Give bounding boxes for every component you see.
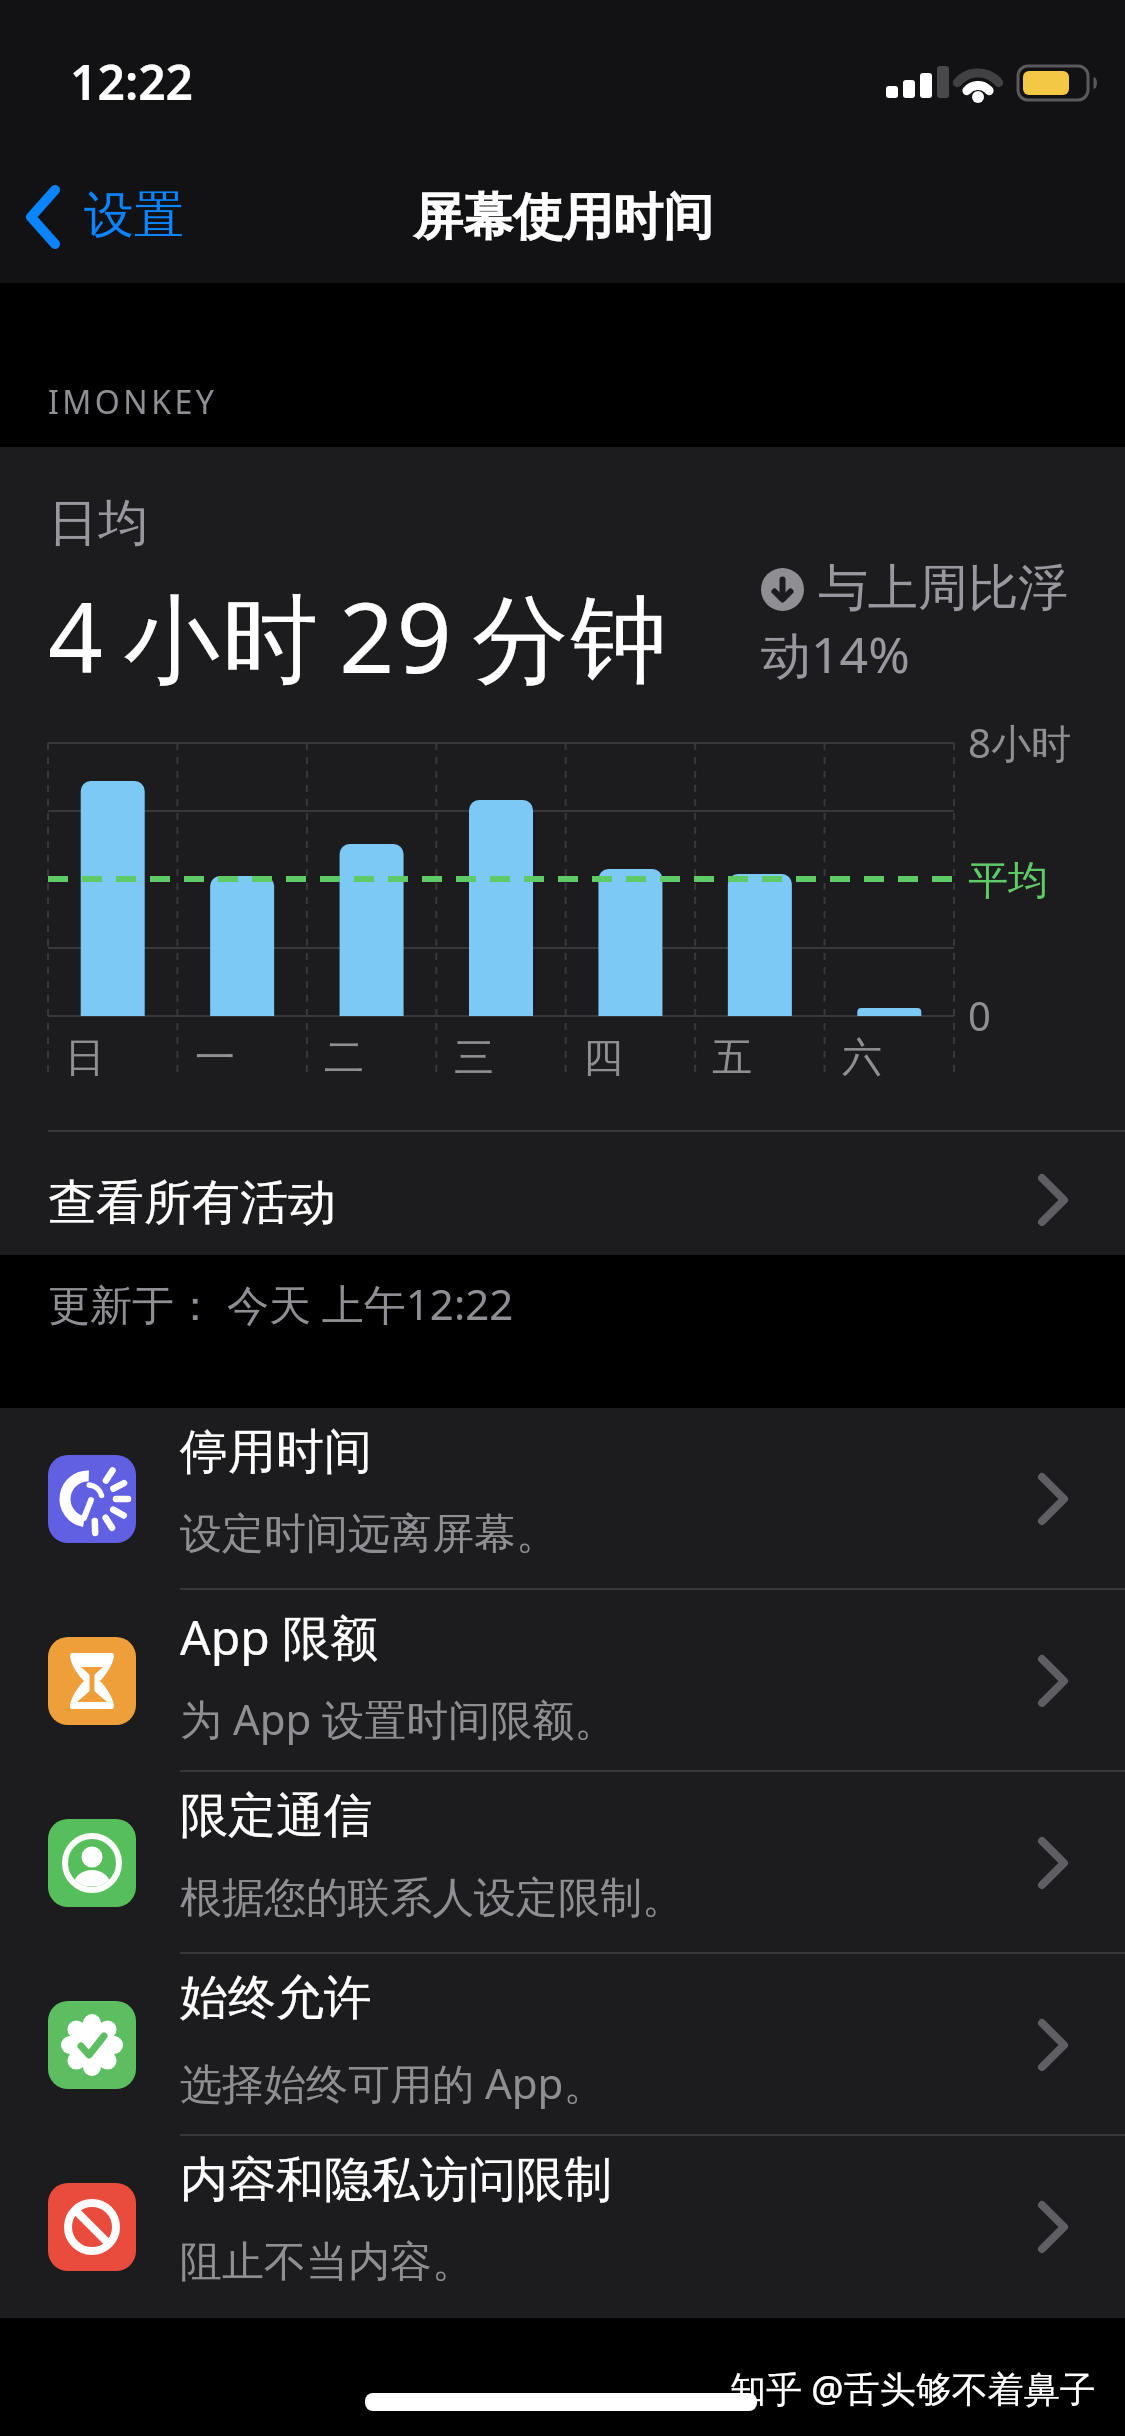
staticText: 4 小时 29 分钟 <box>48 570 670 701</box>
staticText: 六 <box>842 1032 882 1082</box>
staticText: 为 App 设置时间限额。 <box>180 1690 617 1747</box>
staticText: 日均 <box>48 492 148 555</box>
button[interactable]: 内容和隐私访问限制 <box>0 2136 1125 2318</box>
staticText: 限定通信 <box>180 1786 372 1846</box>
staticText: 平均 <box>968 855 1048 905</box>
staticText: 8小时 <box>968 715 1071 770</box>
staticText: 更新于： 今天 上午12:22 <box>48 1275 514 1332</box>
staticText: 五 <box>712 1032 752 1082</box>
staticText: 二 <box>324 1032 364 1082</box>
staticText: 始终允许 <box>180 1968 372 2028</box>
button[interactable]: 查看所有活动 <box>0 1131 1125 1255</box>
button[interactable]: 始终允许 <box>0 1954 1125 2136</box>
staticText: 查看所有活动 <box>48 1173 336 1233</box>
staticText: 选择始终可用的 App。 <box>180 2054 606 2111</box>
button[interactable] <box>20 180 200 260</box>
staticText: 阻止不当内容。 <box>180 2236 474 2289</box>
staticText: IMONKEY <box>48 380 218 424</box>
staticText: 动14% <box>761 620 910 688</box>
staticText: 知乎 @舌头够不着鼻子 <box>730 2364 1096 2413</box>
button[interactable]: 限定通信 <box>0 1772 1125 1954</box>
staticText: 一 <box>195 1032 235 1082</box>
staticText: 与上周比浮 <box>818 557 1068 620</box>
button[interactable]: App 限额 <box>0 1590 1125 1772</box>
staticText: 日 <box>65 1032 105 1082</box>
button[interactable]: 停用时间 <box>0 1408 1125 1590</box>
staticText: 0 <box>968 988 991 1042</box>
staticText: 12:22 <box>70 49 194 114</box>
staticText: 四 <box>583 1032 623 1082</box>
staticText: 根据您的联系人设定限制。 <box>180 1872 684 1925</box>
staticText: 停用时间 <box>180 1422 372 1482</box>
staticText: 内容和隐私访问限制 <box>180 2150 612 2210</box>
staticText: 设定时间远离屏幕。 <box>180 1508 558 1561</box>
staticText: App 限额 <box>180 1604 379 1670</box>
staticText: 设置 <box>84 184 184 247</box>
staticText: 屏幕使用时间 <box>413 186 713 249</box>
staticText: 三 <box>454 1032 494 1082</box>
